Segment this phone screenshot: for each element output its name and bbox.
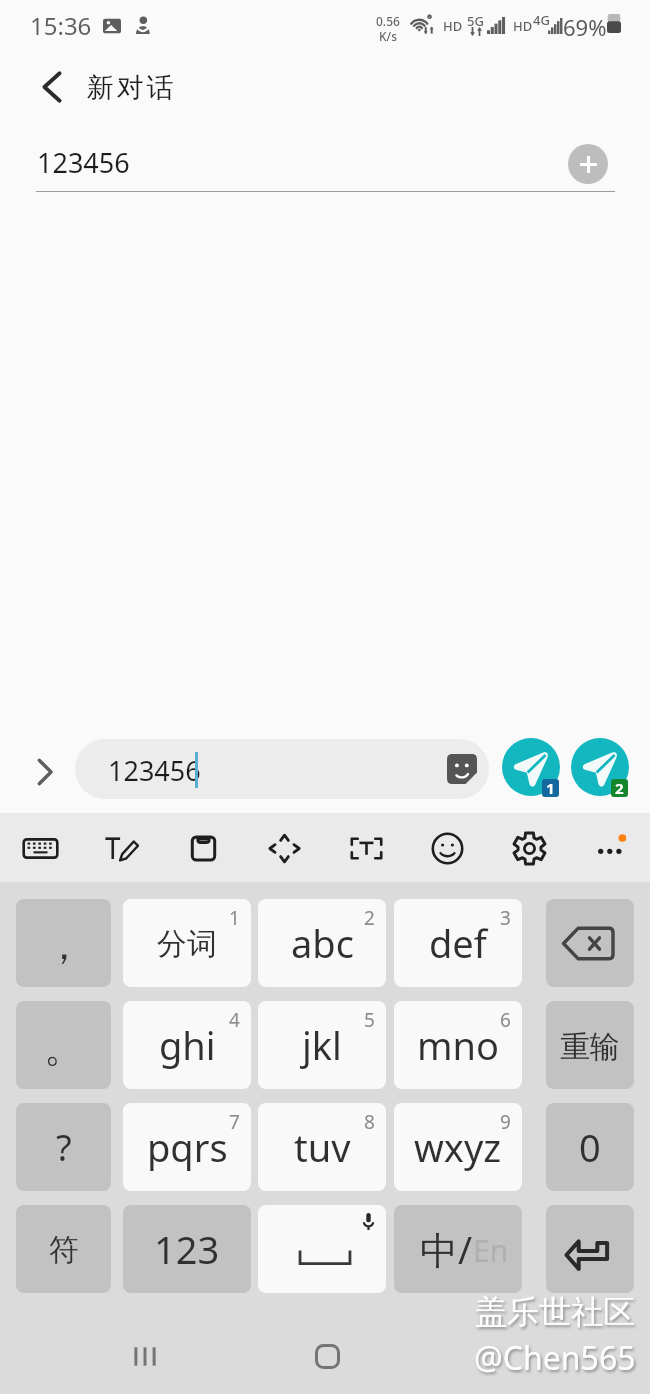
staticText: pqrs [147, 1121, 228, 1173]
button[interactable]: 0 [546, 1103, 634, 1191]
staticText: HD [443, 17, 463, 35]
button[interactable]: tuv [258, 1103, 386, 1191]
button[interactable]: abc [258, 899, 386, 987]
button[interactable]: Home [287, 1309, 367, 1394]
staticText: abc [291, 917, 354, 969]
button[interactable]: ? [16, 1103, 111, 1191]
staticText: HD [513, 17, 533, 35]
button[interactable]: 中/ [394, 1205, 522, 1293]
button[interactable]: mno [394, 1001, 522, 1089]
button[interactable]: More options [578, 816, 642, 880]
staticText: 1 [546, 779, 555, 796]
staticText: 分词 [157, 925, 217, 963]
staticText: 123 [154, 1223, 220, 1275]
button[interactable]: Settings [497, 816, 561, 880]
button[interactable]: Send with SIM 1 [502, 738, 560, 796]
staticText: 0 [579, 1121, 601, 1173]
staticText: jkl [302, 1019, 342, 1071]
staticText: 0.56 [376, 13, 400, 29]
staticText: 5G [467, 12, 484, 30]
staticText: tuv [294, 1121, 351, 1173]
staticText: 5 [364, 1007, 375, 1033]
staticText: 4 [229, 1007, 240, 1033]
staticText: 9 [500, 1109, 511, 1135]
staticText: 。 [44, 1022, 84, 1072]
staticText: 中/ [420, 1223, 473, 1275]
button[interactable]: Handwriting [89, 816, 153, 880]
button[interactable]: enter [546, 1205, 634, 1293]
staticText: @Chen565 [474, 1336, 636, 1380]
staticText: 重输 [560, 1028, 620, 1066]
staticText: 3 [500, 905, 511, 931]
staticText: ， [44, 920, 84, 970]
button[interactable]: def [394, 899, 522, 987]
staticText: 2 [615, 779, 624, 796]
staticText: 6 [500, 1007, 511, 1033]
button[interactable]: Recents [105, 1309, 185, 1394]
staticText: 新对话 [85, 71, 175, 105]
button[interactable]: ghi [123, 1001, 251, 1089]
staticText: 符 [49, 1231, 79, 1269]
staticText: 8 [364, 1109, 375, 1135]
staticText: ghi [159, 1019, 216, 1071]
staticText: K/s [379, 28, 398, 44]
button[interactable]: 分词 [123, 899, 251, 987]
staticText: 盖乐世社区 [475, 1292, 635, 1332]
button[interactable]: wxyz [394, 1103, 522, 1191]
staticText: 69% [563, 12, 607, 42]
staticText: En [473, 1230, 509, 1271]
staticText: 123456 [37, 144, 130, 181]
button[interactable]: space [258, 1205, 386, 1293]
button[interactable]: Back [462, 1300, 542, 1394]
button[interactable]: 123456 [75, 739, 489, 799]
staticText: 4G [533, 11, 550, 29]
button[interactable]: 123 [123, 1205, 251, 1293]
button[interactable]: pqrs [123, 1103, 251, 1191]
button[interactable]: Emoji [415, 816, 479, 880]
button[interactable]: Send with SIM 2 [571, 738, 629, 796]
button[interactable]: Add contact [568, 144, 608, 184]
button[interactable]: 。 [16, 1001, 111, 1089]
button[interactable]: 符 [16, 1205, 111, 1293]
staticText: wxyz [414, 1121, 502, 1173]
staticText: 2 [364, 905, 375, 931]
staticText: ? [56, 1123, 72, 1172]
button[interactable]: ， [16, 899, 111, 987]
button[interactable]: 重输 [546, 1001, 634, 1089]
staticText: 1 [229, 905, 240, 931]
button[interactable]: Clipboard [171, 816, 235, 880]
button[interactable]: Move cursor [252, 816, 316, 880]
button[interactable]: Text recognition [334, 816, 398, 880]
button[interactable]: Keyboard [8, 816, 72, 880]
staticText: mno [417, 1019, 500, 1071]
button[interactable]: Expand toolbar [14, 730, 76, 814]
staticText: 15:36 [30, 9, 92, 42]
staticText: def [429, 917, 487, 969]
button[interactable]: backspace [546, 899, 634, 987]
button[interactable]: Back [24, 59, 80, 115]
staticText: 7 [229, 1109, 240, 1135]
staticText: 123456 [108, 752, 201, 789]
button[interactable]: jkl [258, 1001, 386, 1089]
